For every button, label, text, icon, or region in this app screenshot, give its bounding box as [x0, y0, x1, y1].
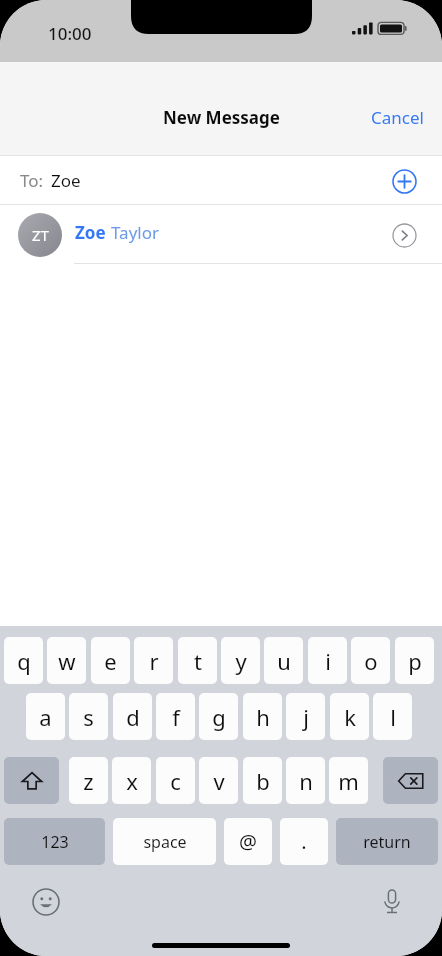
staticText: r	[149, 646, 159, 676]
button[interactable]: g	[199, 693, 238, 740]
staticText: New Message	[163, 106, 280, 129]
button[interactable]: i	[308, 637, 347, 684]
staticText: return	[363, 831, 411, 853]
staticText: o	[364, 646, 378, 676]
staticText: f	[172, 702, 180, 732]
button[interactable]: l	[373, 693, 412, 740]
staticText: u	[277, 646, 291, 676]
staticText: l	[390, 702, 396, 732]
staticText: ZT	[32, 225, 49, 245]
button[interactable]: To:	[0, 156, 442, 205]
button[interactable]: space	[113, 818, 216, 865]
button[interactable]: z	[69, 757, 108, 804]
staticText: e	[104, 646, 117, 676]
button[interactable]: h	[243, 693, 282, 740]
staticText: c	[170, 766, 181, 796]
staticText: w	[58, 646, 76, 676]
button[interactable]: 123	[4, 818, 105, 865]
staticText: t	[194, 646, 202, 676]
staticText: To:	[20, 169, 44, 192]
staticText: a	[39, 702, 52, 732]
staticText: z	[83, 766, 94, 796]
staticText: p	[408, 646, 422, 676]
button[interactable]: Emoji keyboard	[26, 882, 66, 922]
button[interactable]: .	[280, 818, 328, 865]
button[interactable]: y	[221, 637, 260, 684]
button[interactable]: j	[286, 693, 325, 740]
staticText: Zoe	[75, 221, 106, 244]
button[interactable]: n	[286, 757, 325, 804]
button[interactable]: return	[336, 818, 438, 865]
staticText: Taylor	[111, 221, 159, 244]
button[interactable]: ZT	[0, 205, 442, 264]
button[interactable]: e	[91, 637, 130, 684]
button[interactable]: Add contact	[387, 164, 421, 198]
button[interactable]: m	[329, 757, 368, 804]
staticText: i	[325, 646, 331, 676]
button[interactable]: d	[113, 693, 152, 740]
staticText: 10:00	[48, 22, 92, 45]
staticText: m	[338, 766, 359, 796]
button[interactable]: q	[4, 637, 43, 684]
staticText: Zoe	[51, 169, 81, 192]
button[interactable]: Cancel	[353, 98, 442, 137]
staticText: y	[235, 646, 247, 676]
button[interactable]: w	[47, 637, 86, 684]
staticText: k	[344, 702, 356, 732]
button[interactable]: c	[156, 757, 195, 804]
staticText: s	[83, 702, 94, 732]
staticText: b	[256, 766, 270, 796]
button[interactable]: Dictation	[372, 882, 412, 922]
staticText: x	[126, 766, 138, 796]
staticText: j	[303, 702, 309, 732]
button[interactable]: @	[224, 818, 272, 865]
button[interactable]: s	[69, 693, 108, 740]
staticText: Cancel	[371, 106, 424, 129]
staticText: g	[212, 702, 226, 732]
staticText: q	[17, 646, 31, 676]
button[interactable]: p	[395, 637, 434, 684]
button[interactable]: Contact details	[387, 218, 421, 252]
button[interactable]: Shift	[4, 757, 59, 804]
button[interactable]: b	[243, 757, 282, 804]
button[interactable]: f	[156, 693, 195, 740]
button[interactable]: t	[178, 637, 217, 684]
staticText: v	[213, 766, 225, 796]
button[interactable]: x	[112, 757, 151, 804]
staticText: h	[256, 702, 270, 732]
staticText: space	[143, 831, 187, 853]
button[interactable]: u	[264, 637, 303, 684]
button[interactable]: Backspace	[383, 757, 438, 804]
button[interactable]: o	[351, 637, 390, 684]
staticText: .	[301, 828, 307, 855]
staticText: @	[239, 828, 257, 855]
button[interactable]: a	[26, 693, 65, 740]
staticText: n	[299, 766, 313, 796]
button[interactable]: v	[199, 757, 238, 804]
button[interactable]: k	[330, 693, 369, 740]
staticText: 123	[41, 831, 69, 853]
staticText: d	[126, 702, 140, 732]
button[interactable]: r	[134, 637, 173, 684]
